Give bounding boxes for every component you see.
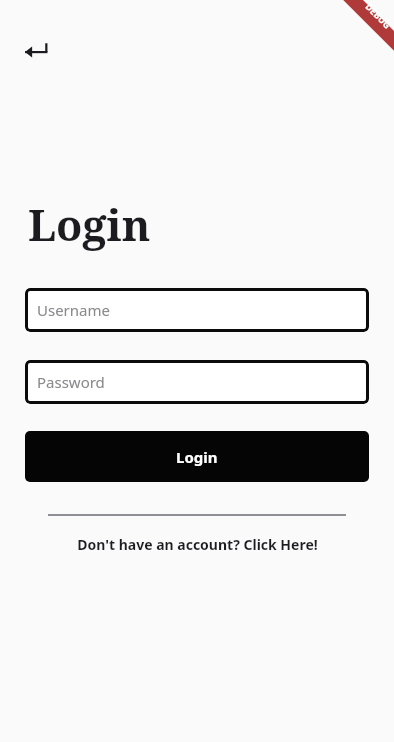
- staticText: Login: [176, 447, 218, 467]
- button[interactable]: Don't have an account? Click Here!: [0, 535, 394, 554]
- button[interactable]: Back: [12, 26, 60, 74]
- staticText: Don't have an account? Click Here!: [77, 535, 318, 554]
- staticText: Username: [37, 300, 110, 320]
- button[interactable]: Username: [25, 288, 369, 332]
- staticText: Password: [37, 372, 105, 392]
- button[interactable]: Password: [25, 360, 369, 404]
- button[interactable]: Login: [25, 431, 369, 482]
- staticText: Login: [28, 195, 151, 254]
